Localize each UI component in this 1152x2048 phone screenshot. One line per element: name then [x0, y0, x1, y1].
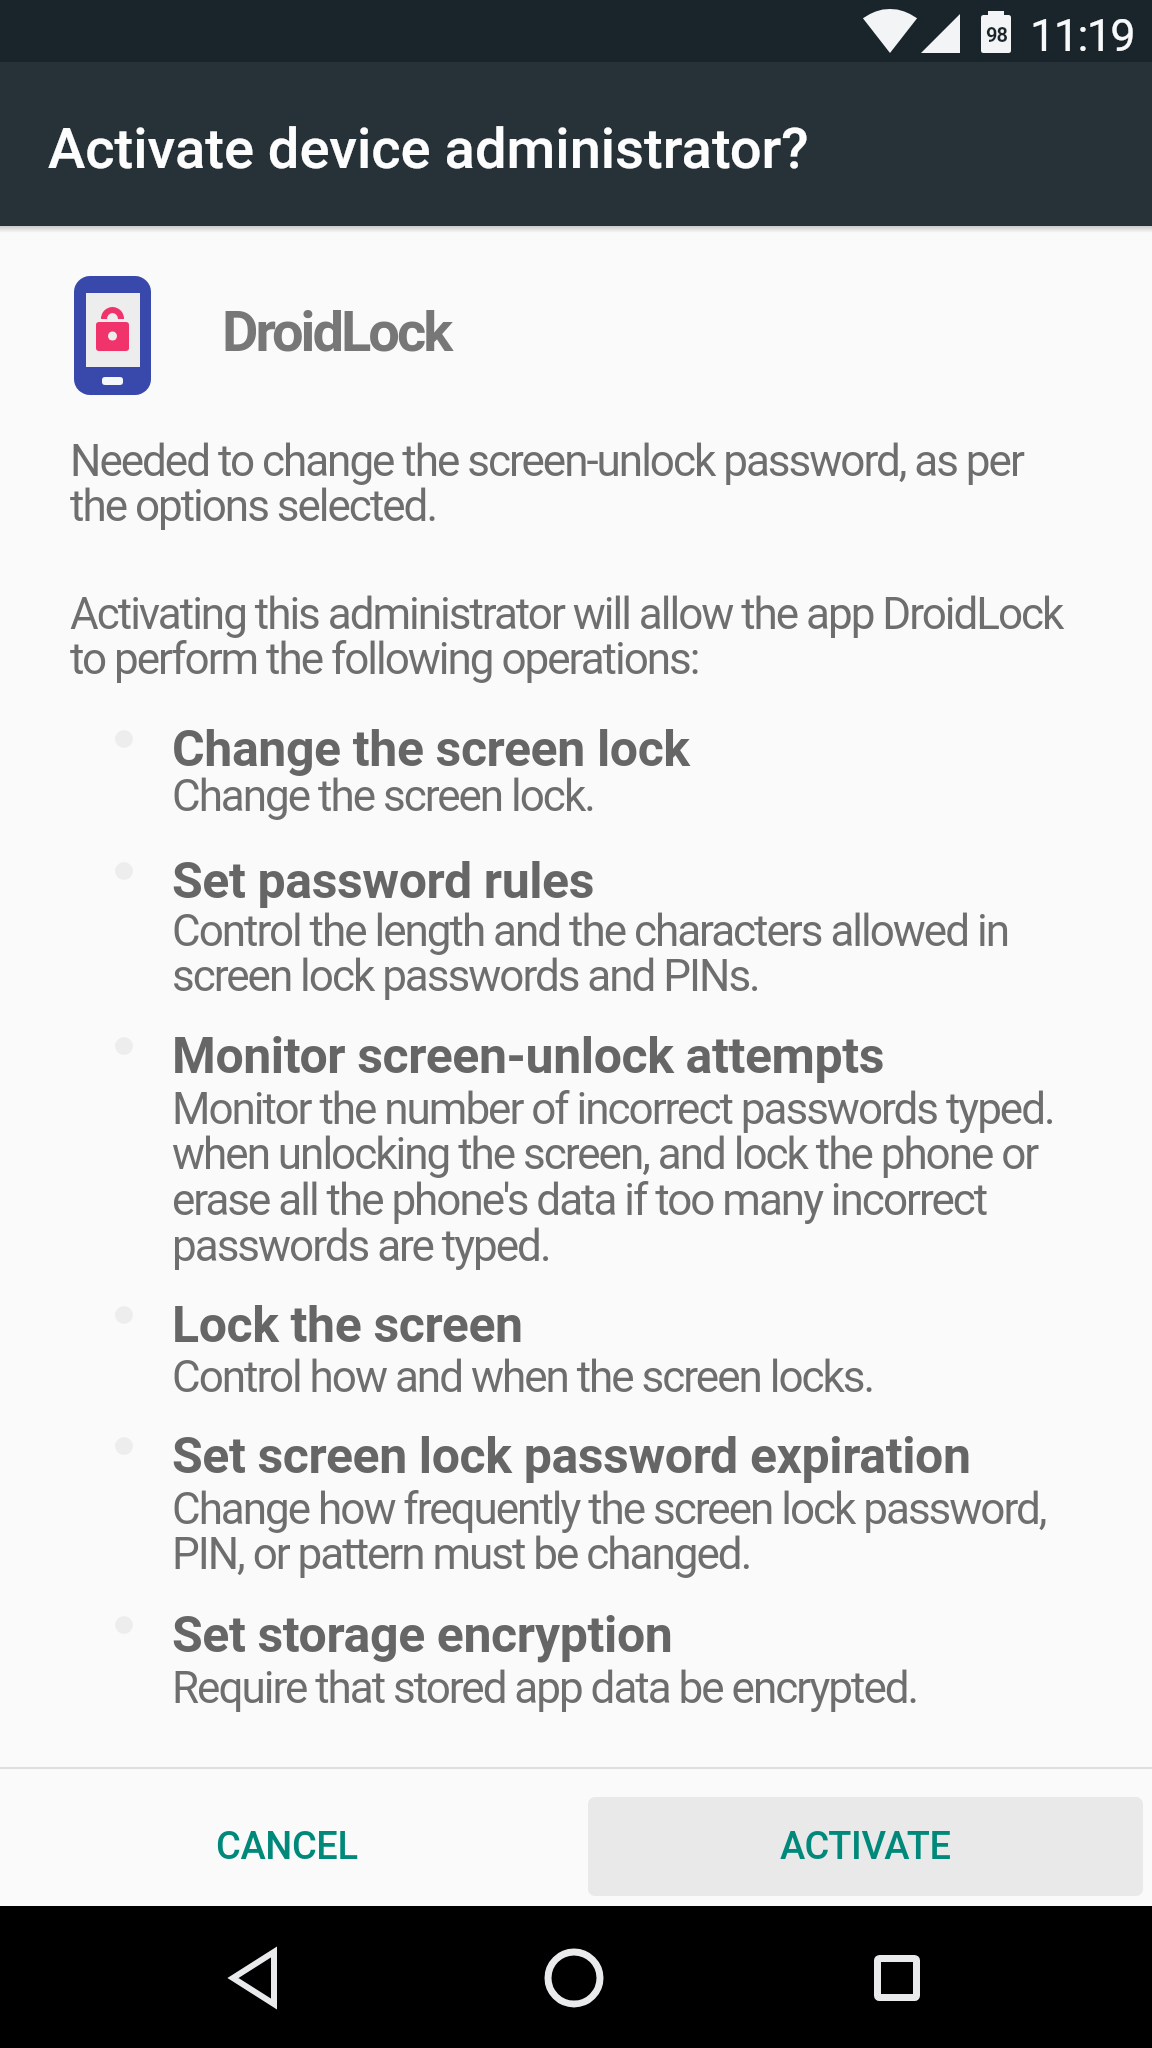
- staticText: Change the screen lock.: [172, 770, 594, 822]
- button[interactable]: [524, 1928, 624, 2028]
- staticText: Activating this administrator will allow…: [70, 588, 1063, 685]
- button[interactable]: [203, 1928, 303, 2028]
- staticText: Set screen lock password expiration: [172, 1427, 971, 1486]
- staticText: Lock the screen: [172, 1296, 523, 1355]
- staticText: Needed to change the screen-unlock passw…: [70, 435, 1023, 532]
- staticText: ACTIVATE: [780, 1824, 951, 1869]
- staticText: 11:19: [1030, 9, 1135, 62]
- staticText: Control the length and the characters al…: [172, 905, 1008, 1002]
- staticText: Monitor screen-unlock attempts: [172, 1027, 885, 1086]
- button[interactable]: CANCEL: [196, 1797, 378, 1896]
- staticText: 98: [986, 23, 1007, 46]
- staticText: Change the screen lock: [172, 720, 690, 779]
- staticText: Change how frequently the screen lock pa…: [172, 1483, 1046, 1580]
- staticText: Require that stored app data be encrypte…: [172, 1662, 918, 1714]
- staticText: DroidLock: [222, 299, 451, 365]
- button[interactable]: ACTIVATE: [588, 1797, 1143, 1896]
- staticText: CANCEL: [216, 1824, 358, 1869]
- staticText: Set password rules: [172, 852, 595, 911]
- button[interactable]: [847, 1928, 947, 2028]
- staticText: Control how and when the screen locks.: [172, 1351, 874, 1403]
- staticText: Monitor the number of incorrect password…: [172, 1083, 1054, 1272]
- staticText: Activate device administrator?: [48, 116, 809, 182]
- staticText: Set storage encryption: [172, 1606, 673, 1665]
